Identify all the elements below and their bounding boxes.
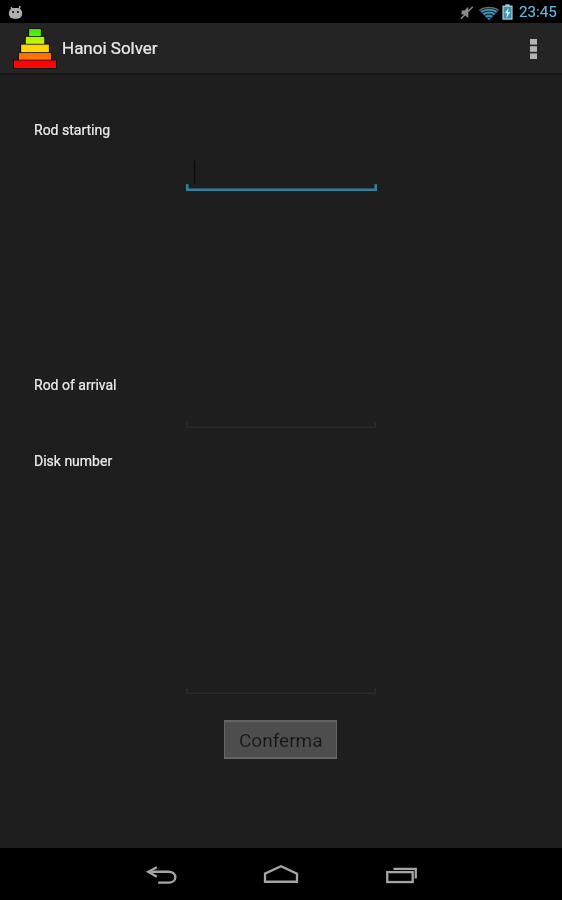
button[interactable]: Home [221,848,341,900]
staticText: Hanoi Solver [62,38,158,58]
button[interactable]: Back [101,848,221,900]
button[interactable]: Recent apps [341,848,461,900]
button[interactable]: Conferma [224,720,337,759]
staticText: Rod starting [34,122,111,138]
staticText: Disk number [34,453,113,469]
button[interactable] [186,146,377,191]
staticText: Rod of arrival [34,377,117,393]
staticText: 23:45 [519,3,557,21]
staticText: Conferma [239,729,323,751]
button[interactable]: More options [516,23,562,75]
